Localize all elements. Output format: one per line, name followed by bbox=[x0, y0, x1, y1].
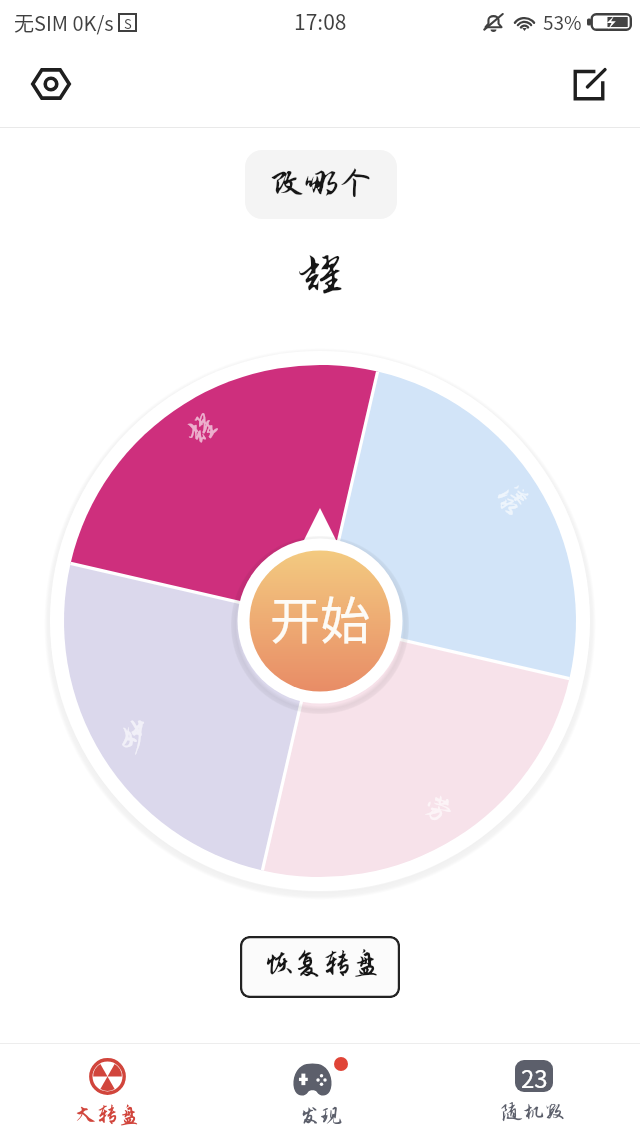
button[interactable] bbox=[46, 347, 594, 895]
staticText: 耀 bbox=[297, 249, 344, 301]
staticText: S bbox=[124, 14, 132, 31]
staticText: 23 bbox=[521, 1060, 548, 1092]
staticText: 无SIM 0K/s bbox=[14, 8, 114, 37]
staticText: 改哪个 bbox=[270, 165, 373, 203]
button[interactable]: 改哪个 bbox=[245, 150, 397, 219]
staticText: 劳 bbox=[416, 786, 461, 832]
staticText: 开始 bbox=[270, 581, 370, 653]
button[interactable]: 23 bbox=[427, 1044, 640, 1138]
staticText: 发现 bbox=[299, 1104, 343, 1128]
staticText: 大转盘 bbox=[75, 1103, 140, 1127]
button[interactable]: Settings bbox=[15, 48, 87, 120]
button[interactable]: 恢复转盘 bbox=[240, 936, 400, 998]
staticText: 耀 bbox=[179, 407, 224, 453]
button[interactable]: 大转盘 bbox=[0, 1044, 214, 1138]
staticText: 漾 bbox=[491, 478, 536, 522]
staticText: 随机数 bbox=[501, 1100, 566, 1124]
staticText: 恢复转盘 bbox=[265, 948, 381, 980]
staticText: 17:08 bbox=[294, 6, 347, 36]
staticText: 妙 bbox=[113, 714, 158, 760]
button[interactable]: Edit bbox=[553, 49, 625, 121]
staticText: 53% bbox=[543, 8, 582, 36]
button[interactable]: 发现 bbox=[214, 1044, 427, 1138]
